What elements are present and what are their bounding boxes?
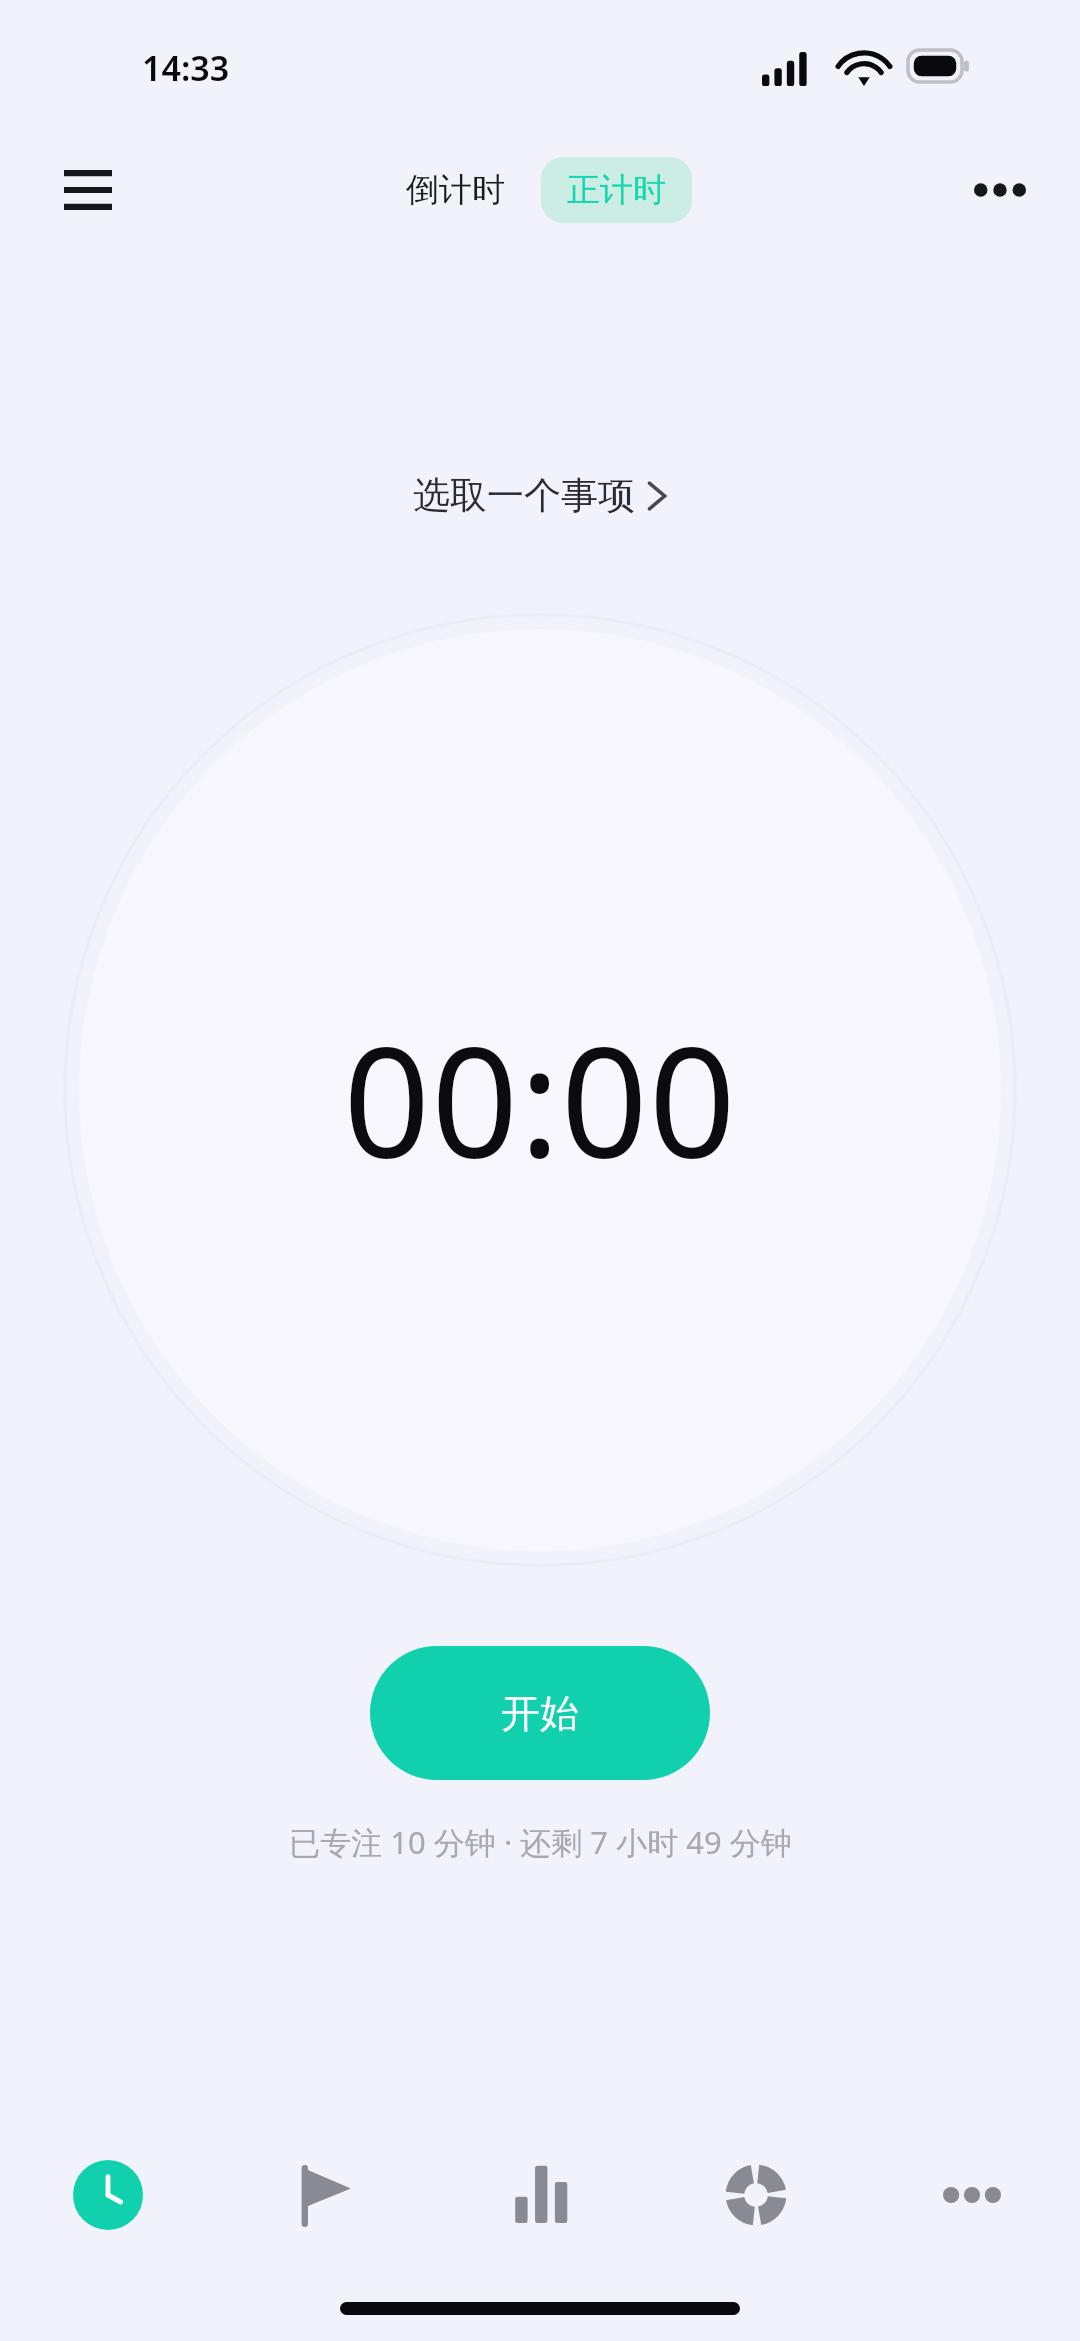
button[interactable]: Timer bbox=[0, 2120, 216, 2270]
staticText: 选取一个事项 bbox=[413, 472, 635, 519]
button[interactable]: Menu bbox=[48, 150, 128, 230]
button[interactable]: 正计时 bbox=[541, 157, 692, 223]
button[interactable]: Report bbox=[648, 2120, 864, 2270]
staticText: 已专注 10 分钟 · 还剩 7 小时 49 分钟 bbox=[289, 1821, 792, 1863]
staticText: 倒计时 bbox=[406, 169, 505, 211]
staticText: 14:33 bbox=[142, 45, 230, 91]
staticText: 正计时 bbox=[567, 169, 666, 211]
button[interactable]: Statistics bbox=[432, 2120, 648, 2270]
button[interactable]: 开始 bbox=[370, 1646, 710, 1780]
staticText: 开始 bbox=[501, 1689, 579, 1738]
button[interactable]: More bbox=[864, 2120, 1080, 2270]
button[interactable]: More options bbox=[960, 150, 1040, 230]
button[interactable]: 选取一个事项 bbox=[397, 464, 683, 527]
button[interactable]: Flag bbox=[216, 2120, 432, 2270]
button[interactable]: 倒计时 bbox=[388, 159, 523, 221]
staticText: 00:00 bbox=[343, 995, 737, 1195]
